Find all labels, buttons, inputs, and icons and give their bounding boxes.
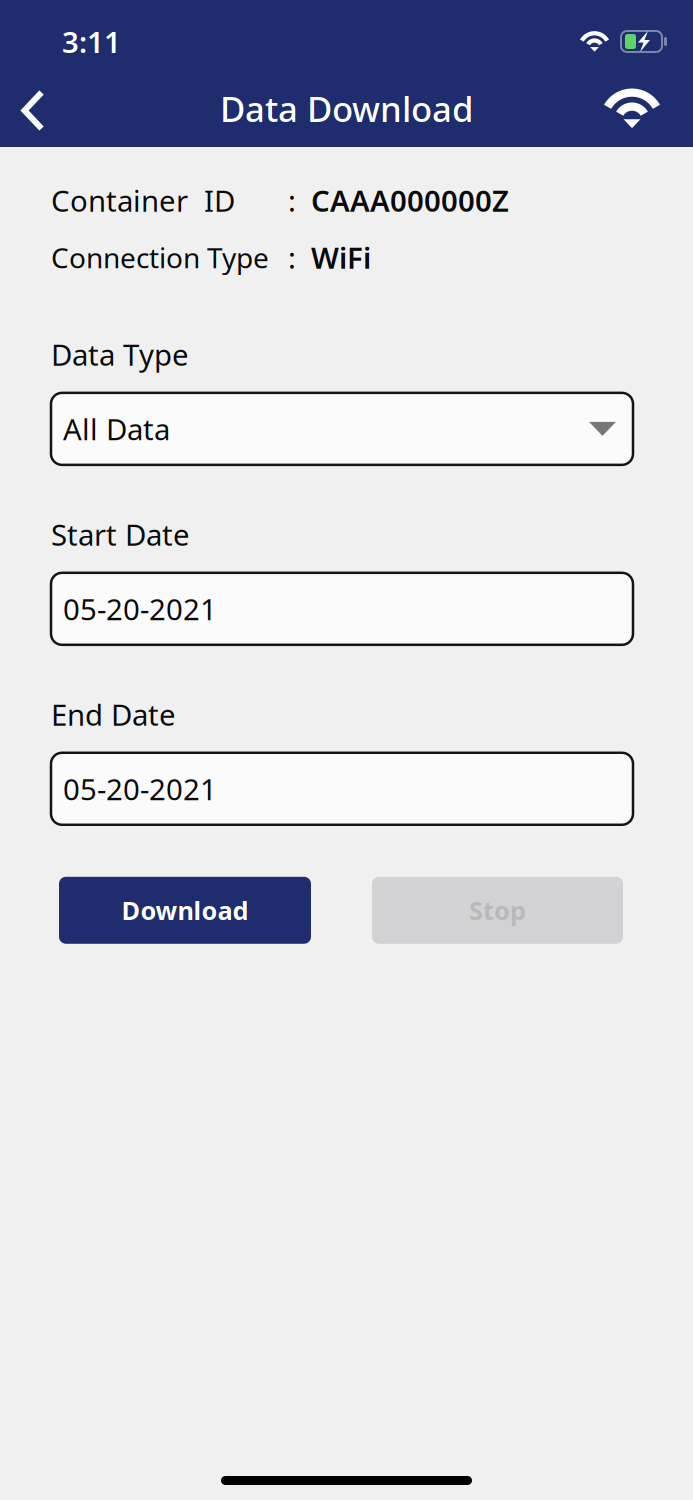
staticText: Container ID — [51, 181, 235, 220]
button[interactable]: Download — [59, 877, 311, 944]
staticText: Stop — [469, 893, 526, 927]
staticText: CAAA000000Z — [311, 181, 509, 220]
staticText: : — [288, 181, 296, 220]
button[interactable]: Wi-Fi connection — [596, 69, 668, 139]
button[interactable]: 05-20-2021 — [51, 573, 633, 645]
staticText: WiFi — [311, 238, 371, 277]
button[interactable]: 05-20-2021 — [51, 753, 633, 825]
button[interactable]: All Data — [51, 393, 633, 465]
staticText: 3:11 — [62, 22, 121, 61]
button[interactable]: Stop — [372, 877, 623, 944]
staticText: : — [288, 238, 296, 277]
staticText: Data Download — [220, 85, 473, 131]
staticText: Download — [121, 893, 248, 927]
staticText: All Data — [63, 409, 170, 448]
staticText: Start Date — [51, 515, 190, 554]
staticText: Data Type — [51, 335, 189, 374]
button[interactable]: Back — [0, 69, 66, 139]
staticText: 05-20-2021 — [63, 769, 217, 808]
staticText: 05-20-2021 — [63, 589, 217, 628]
staticText: End Date — [51, 695, 176, 734]
staticText: Connection Type — [51, 239, 269, 276]
